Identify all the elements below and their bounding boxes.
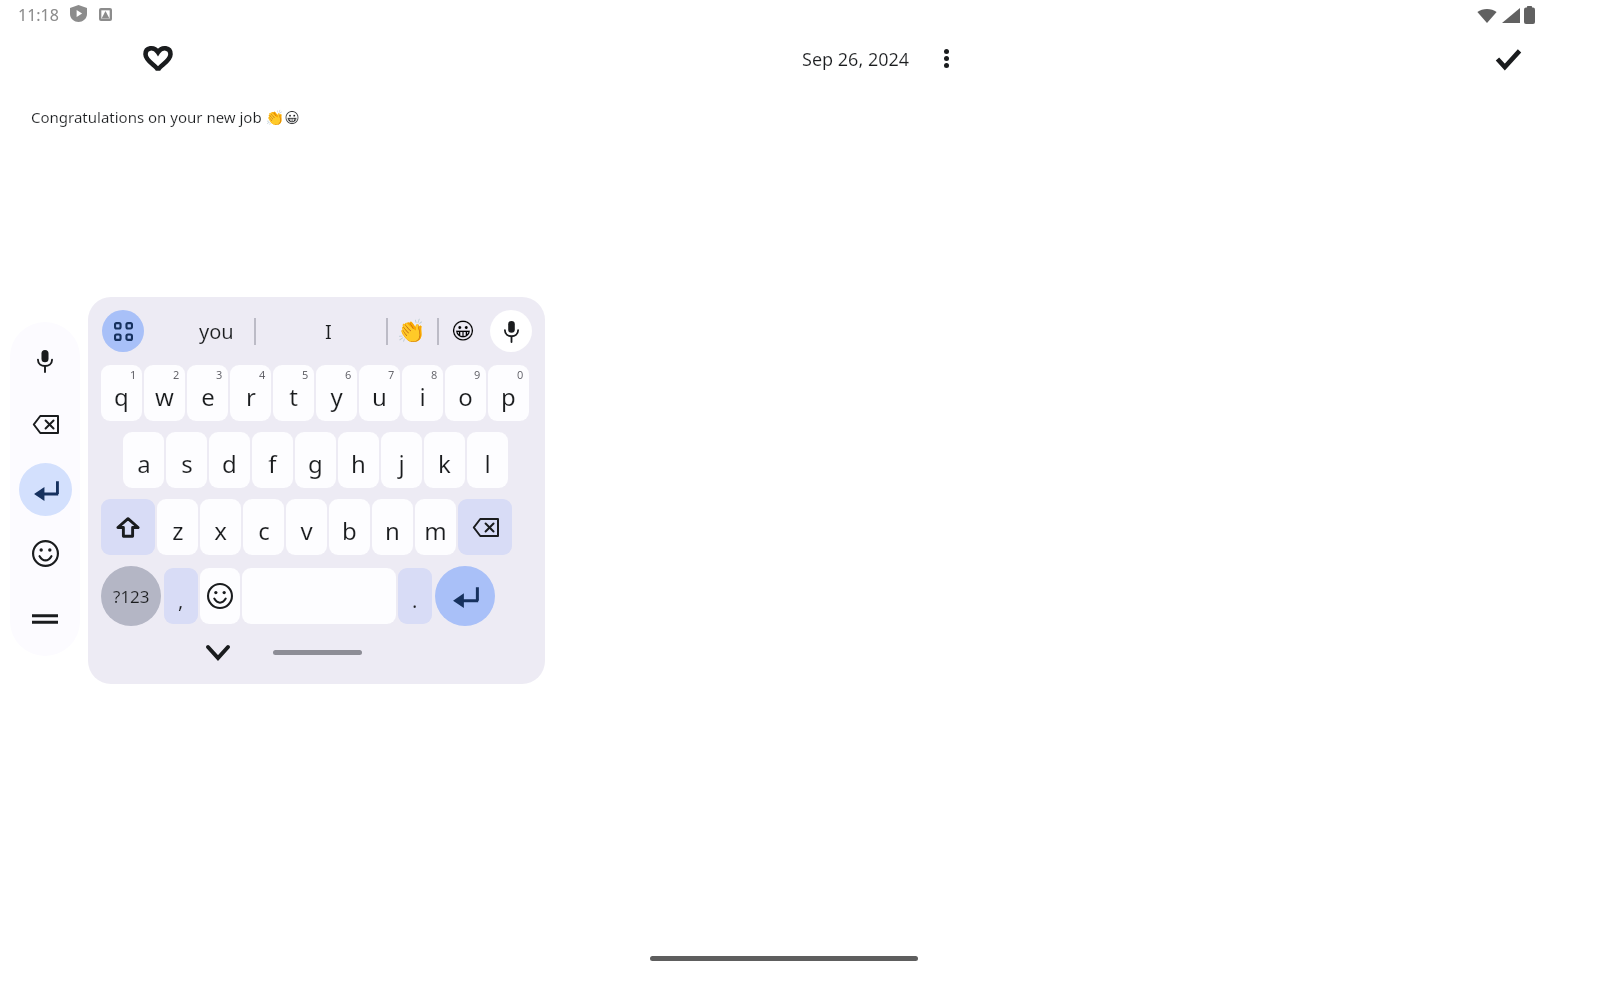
button[interactable]: you (166, 297, 266, 365)
staticText: w (155, 380, 174, 413)
staticText: t (289, 380, 298, 413)
staticText: h (351, 447, 366, 480)
staticText: y (330, 380, 343, 413)
button[interactable]: 👏 (388, 297, 434, 365)
staticText: Sep 26, 2024 (802, 47, 910, 72)
staticText: 👏 (397, 318, 426, 345)
button[interactable]: Hide keyboard (198, 632, 238, 672)
button[interactable]: I (278, 297, 378, 365)
button[interactable]: r (230, 365, 271, 421)
button[interactable]: Shift (101, 499, 155, 555)
button[interactable]: p (488, 365, 529, 421)
staticText: p (501, 380, 516, 413)
button[interactable]: k (424, 432, 465, 488)
staticText: m (424, 514, 447, 547)
staticText: b (342, 514, 357, 547)
staticText: c (258, 514, 270, 547)
button[interactable]: Backspace (10, 398, 80, 451)
staticText: f (268, 447, 277, 480)
button[interactable]: Toolbar (102, 310, 144, 352)
staticText: you (199, 318, 234, 345)
staticText: r (246, 380, 256, 413)
button[interactable]: n (372, 499, 413, 555)
staticText: e (201, 380, 215, 413)
button[interactable]: Save (1484, 35, 1532, 83)
staticText: z (172, 514, 184, 547)
staticText: j (398, 447, 405, 480)
staticText: s (181, 447, 193, 480)
button[interactable]: Voice input (490, 310, 532, 352)
staticText: x (214, 514, 227, 547)
button[interactable]: c (243, 499, 284, 555)
staticText: ?123 (113, 585, 150, 608)
button[interactable]: b (329, 499, 370, 555)
button[interactable]: e (187, 365, 228, 421)
button[interactable]: a (123, 432, 164, 488)
button[interactable]: i (402, 365, 443, 421)
staticText: 9 (474, 367, 481, 382)
button[interactable]: . (398, 568, 432, 624)
button[interactable]: Enter (435, 566, 495, 626)
staticText: 1 (130, 367, 137, 382)
button[interactable]: q (101, 365, 142, 421)
button[interactable]: j (381, 432, 422, 488)
staticText: I (325, 318, 332, 345)
staticText: Congratulations on your new job 👏😀 (31, 107, 300, 127)
staticText: 0 (517, 367, 524, 382)
staticText: . (412, 587, 418, 614)
button[interactable]: f (252, 432, 293, 488)
staticText: , (178, 587, 184, 614)
button[interactable]: Emoji (200, 568, 240, 624)
button[interactable]: Voice input (10, 334, 80, 387)
button[interactable]: v (286, 499, 327, 555)
button[interactable]: Enter (19, 463, 72, 516)
staticText: l (484, 447, 491, 480)
button[interactable]: Favorite (134, 35, 182, 83)
button[interactable]: w (144, 365, 185, 421)
staticText: a (137, 447, 151, 480)
button[interactable]: , (164, 568, 198, 624)
staticText: 11:18 (18, 4, 59, 26)
staticText: 4 (259, 367, 266, 382)
staticText: v (300, 514, 313, 547)
button[interactable]: ?123 (101, 566, 161, 626)
staticText: 😀 (451, 318, 475, 345)
staticText: n (385, 514, 400, 547)
staticText: 8 (431, 367, 438, 382)
button[interactable]: Backspace (458, 499, 512, 555)
button[interactable]: h (338, 432, 379, 488)
staticText: 5 (302, 367, 309, 382)
staticText: 3 (216, 367, 223, 382)
staticText: o (458, 380, 473, 413)
button[interactable]: z (157, 499, 198, 555)
button[interactable]: 😀 (440, 297, 486, 365)
staticText: g (308, 447, 323, 480)
staticText: k (438, 447, 451, 480)
button[interactable]: Menu (10, 592, 80, 645)
staticText: u (372, 380, 387, 413)
button[interactable]: y (316, 365, 357, 421)
button[interactable]: g (295, 432, 336, 488)
staticText: q (114, 380, 129, 413)
staticText: i (419, 380, 426, 413)
button[interactable]: Emoji (10, 527, 80, 580)
staticText: 7 (388, 367, 395, 382)
staticText: 2 (173, 367, 180, 382)
button[interactable]: t (273, 365, 314, 421)
staticText: 6 (345, 367, 352, 382)
staticText: d (222, 447, 237, 480)
button[interactable]: More options (923, 35, 969, 81)
button[interactable]: u (359, 365, 400, 421)
button[interactable]: x (200, 499, 241, 555)
button[interactable]: m (415, 499, 456, 555)
button[interactable]: d (209, 432, 250, 488)
button[interactable]: o (445, 365, 486, 421)
button[interactable]: s (166, 432, 207, 488)
button[interactable]: l (467, 432, 508, 488)
